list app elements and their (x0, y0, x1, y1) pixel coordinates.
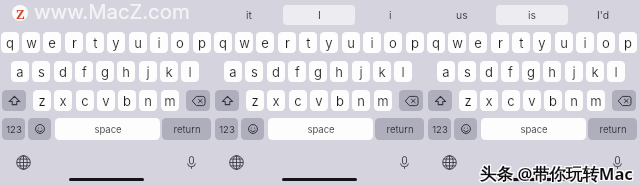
button[interactable]: l (394, 61, 412, 82)
button[interactable]: r (278, 32, 296, 53)
button[interactable]: I'd (571, 5, 635, 25)
button[interactable]: j (139, 61, 157, 82)
button[interactable]: i (363, 32, 381, 53)
button[interactable]: p (406, 32, 424, 53)
button[interactable]: r (65, 32, 83, 53)
button[interactable]: c (289, 90, 307, 111)
button[interactable]: h (330, 61, 348, 82)
button[interactable]: u (342, 32, 360, 53)
button[interactable]: y (320, 32, 338, 53)
button[interactable]: b (331, 90, 349, 111)
button[interactable]: Dictation (182, 153, 201, 172)
button[interactable]: s (458, 61, 476, 82)
button[interactable]: d (54, 61, 72, 82)
button[interactable]: v (310, 90, 328, 111)
button[interactable]: Emoji (454, 118, 477, 140)
button[interactable]: t (86, 32, 104, 53)
button[interactable]: x (267, 90, 285, 111)
button[interactable]: c (502, 90, 520, 111)
button[interactable]: e (469, 32, 487, 53)
button[interactable]: o (597, 32, 615, 53)
button[interactable]: t (512, 32, 530, 53)
button[interactable]: f (75, 61, 93, 82)
button[interactable]: Shift (215, 90, 239, 111)
button[interactable]: u (555, 32, 573, 53)
button[interactable]: return (162, 118, 211, 140)
button[interactable]: Delete (186, 90, 210, 111)
button[interactable]: Dictation (608, 153, 627, 172)
button[interactable]: z (459, 90, 477, 111)
button[interactable]: v (97, 90, 115, 111)
button[interactable]: h (117, 61, 135, 82)
button[interactable]: Emoji (28, 118, 51, 140)
button[interactable]: y (107, 32, 125, 53)
button[interactable]: 123 (215, 118, 238, 140)
button[interactable]: i (358, 5, 422, 25)
button[interactable]: t (299, 32, 317, 53)
button[interactable]: return (375, 118, 424, 140)
button[interactable]: c (76, 90, 94, 111)
button[interactable]: q (1, 32, 19, 53)
button[interactable]: us (430, 5, 494, 25)
button[interactable]: Change keyboard (440, 153, 459, 172)
button[interactable]: l (181, 61, 199, 82)
button[interactable]: return (588, 118, 637, 140)
button[interactable]: Emoji (241, 118, 264, 140)
button[interactable]: 123 (428, 118, 451, 140)
button[interactable]: a (437, 61, 455, 82)
button[interactable]: w (235, 32, 253, 53)
button[interactable]: m (161, 90, 179, 111)
button[interactable]: p (619, 32, 637, 53)
button[interactable]: g (96, 61, 114, 82)
button[interactable]: m (587, 90, 605, 111)
button[interactable]: r (491, 32, 509, 53)
button[interactable]: i (576, 32, 594, 53)
button[interactable]: o (171, 32, 189, 53)
button[interactable]: v (523, 90, 541, 111)
button[interactable]: f (288, 61, 306, 82)
button[interactable]: n (139, 90, 157, 111)
button[interactable]: g (522, 61, 540, 82)
button[interactable]: f (501, 61, 519, 82)
button[interactable]: s (245, 61, 263, 82)
button[interactable]: e (256, 32, 274, 53)
button[interactable]: e (43, 32, 61, 53)
button[interactable]: space (55, 118, 160, 140)
button[interactable]: p (193, 32, 211, 53)
button[interactable]: d (480, 61, 498, 82)
button[interactable]: g (309, 61, 327, 82)
button[interactable]: d (267, 61, 285, 82)
button[interactable]: k (373, 61, 391, 82)
button[interactable]: 123 (2, 118, 25, 140)
button[interactable]: k (160, 61, 178, 82)
button[interactable]: h (543, 61, 561, 82)
button[interactable]: x (480, 90, 498, 111)
button[interactable]: Dictation (395, 153, 414, 172)
button[interactable]: n (352, 90, 370, 111)
button[interactable]: q (214, 32, 232, 53)
button[interactable]: j (565, 61, 583, 82)
button[interactable]: o (384, 32, 402, 53)
button[interactable]: q (427, 32, 445, 53)
button[interactable]: w (448, 32, 466, 53)
button[interactable]: Delete (612, 90, 636, 111)
button[interactable]: I (287, 5, 351, 25)
button[interactable]: l (607, 61, 625, 82)
button[interactable]: Shift (2, 90, 26, 111)
button[interactable]: x (54, 90, 72, 111)
button[interactable]: i (150, 32, 168, 53)
button[interactable]: j (352, 61, 370, 82)
button[interactable]: a (224, 61, 242, 82)
button[interactable]: space (268, 118, 373, 140)
button[interactable]: z (246, 90, 264, 111)
button[interactable]: n (565, 90, 583, 111)
button[interactable]: w (22, 32, 40, 53)
button[interactable]: Shift (428, 90, 452, 111)
button[interactable]: k (586, 61, 604, 82)
button[interactable]: y (533, 32, 551, 53)
button[interactable]: space (481, 118, 586, 140)
button[interactable]: m (374, 90, 392, 111)
button[interactable]: it (217, 5, 281, 25)
button[interactable]: b (118, 90, 136, 111)
button[interactable]: u (129, 32, 147, 53)
